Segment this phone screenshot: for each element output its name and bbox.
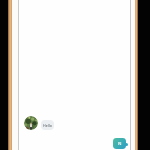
button[interactable]: Hello: [41, 120, 54, 130]
button[interactable]: [24, 116, 38, 130]
staticText: N: [118, 141, 122, 147]
button[interactable]: N: [113, 138, 126, 149]
staticText: Hello: [43, 123, 52, 128]
